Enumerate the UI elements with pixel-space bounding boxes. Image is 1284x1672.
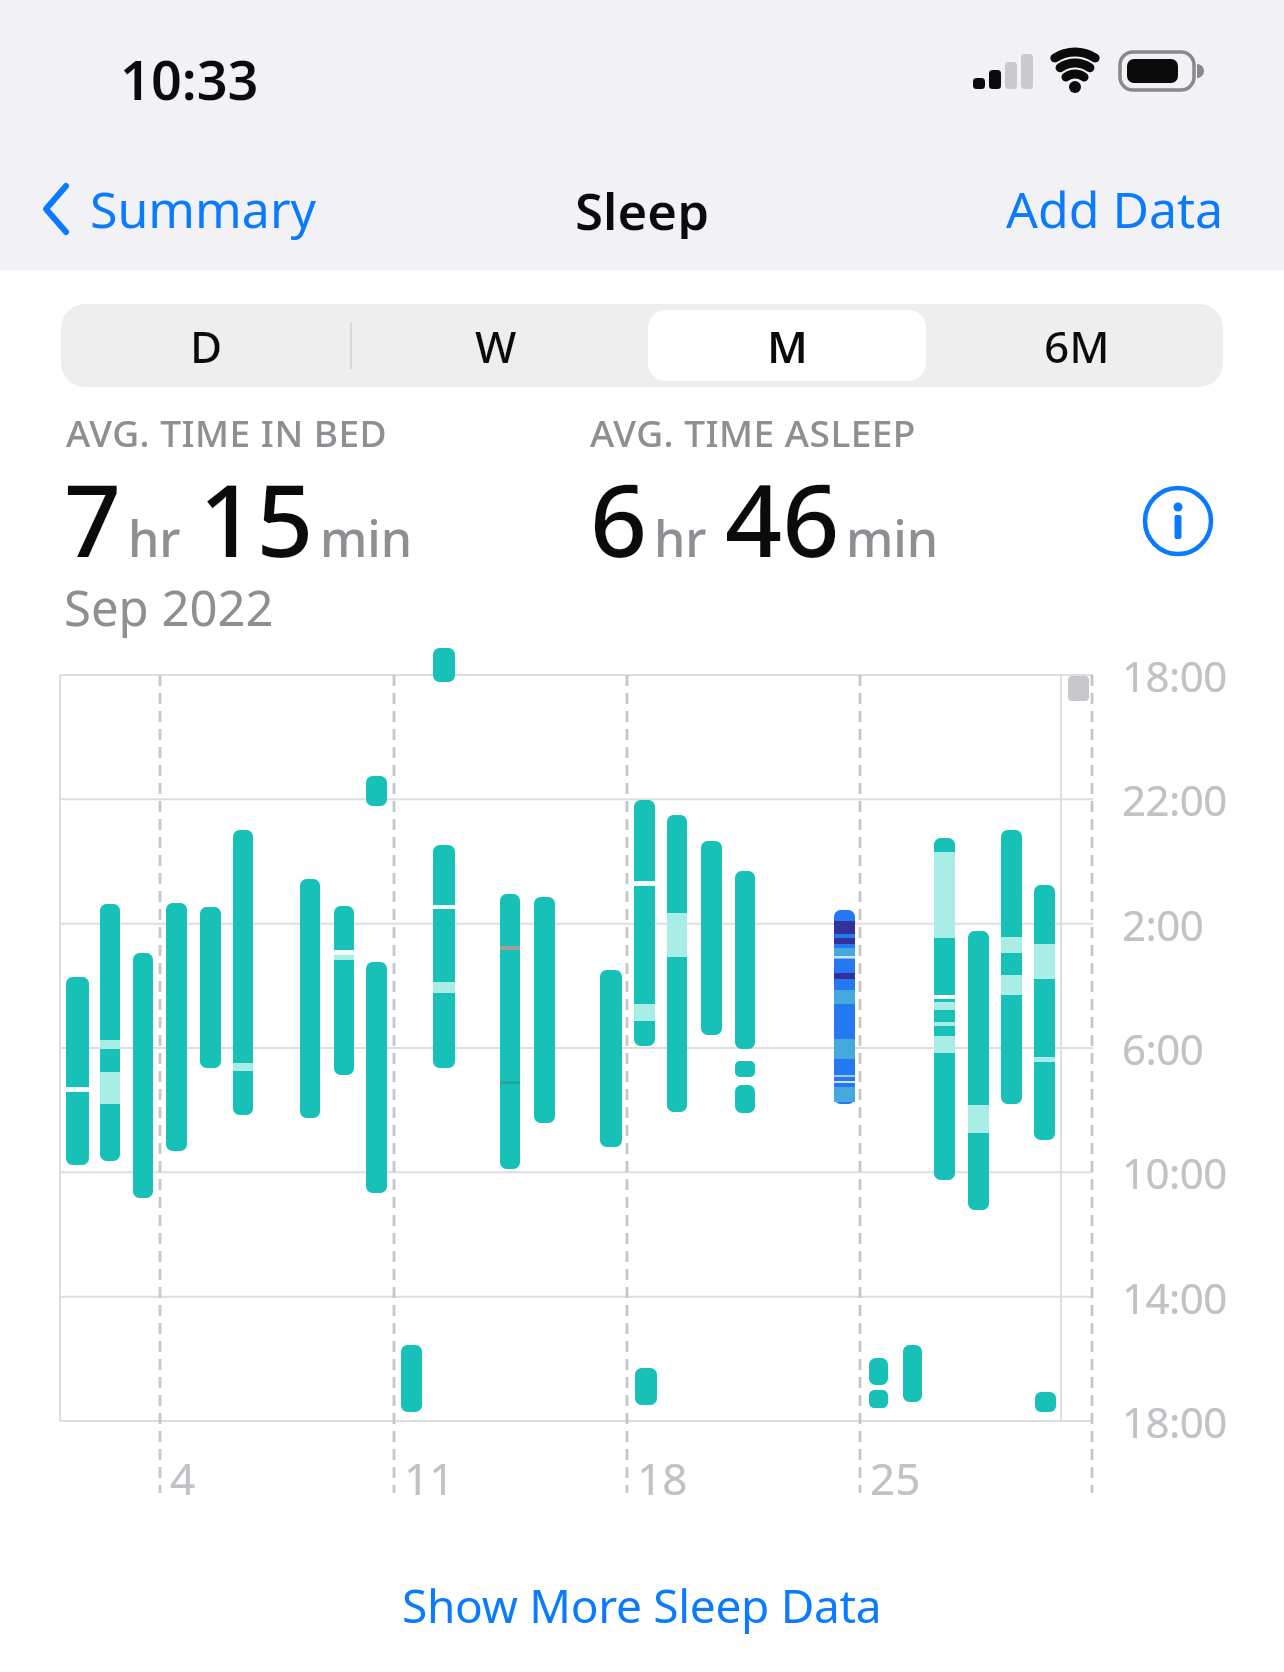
staticText: 18:00 bbox=[1122, 647, 1227, 704]
staticText: W bbox=[475, 316, 517, 376]
staticText: AVG. TIME IN BED bbox=[66, 407, 388, 457]
staticText: 11 bbox=[404, 1448, 455, 1508]
staticText: 15 bbox=[199, 450, 314, 586]
staticText: D bbox=[190, 316, 223, 376]
button[interactable]: Add Data bbox=[984, 175, 1224, 239]
button[interactable]: D bbox=[61, 304, 351, 387]
staticText: AVG. TIME ASLEEP bbox=[590, 407, 916, 457]
button[interactable]: M bbox=[642, 304, 932, 387]
staticText: 10:00 bbox=[1122, 1144, 1227, 1201]
staticText: Sleep bbox=[575, 175, 710, 239]
button[interactable]: Summary bbox=[40, 175, 317, 243]
staticText: min bbox=[320, 504, 413, 572]
staticText: 22:00 bbox=[1122, 771, 1227, 828]
staticText: 18 bbox=[637, 1448, 688, 1508]
staticText: 14:00 bbox=[1122, 1269, 1227, 1326]
staticText: 18:00 bbox=[1122, 1393, 1227, 1450]
button[interactable]: 6M bbox=[932, 304, 1222, 387]
staticText: hr bbox=[654, 504, 707, 572]
staticText: Show More Sleep Data bbox=[402, 1574, 882, 1637]
staticText: 25 bbox=[870, 1448, 921, 1508]
staticText: 7 bbox=[64, 450, 122, 586]
staticText: Add Data bbox=[1006, 175, 1224, 239]
staticText: 4 bbox=[170, 1448, 196, 1508]
staticText: 10:33 bbox=[120, 42, 259, 116]
staticText: M bbox=[767, 316, 808, 376]
button[interactable] bbox=[1140, 483, 1216, 559]
staticText: 46 bbox=[725, 450, 840, 586]
button[interactable]: Show More Sleep Data bbox=[0, 1570, 1284, 1640]
staticText: 2:00 bbox=[1122, 896, 1204, 953]
staticText: Summary bbox=[90, 175, 317, 243]
staticText: min bbox=[846, 504, 939, 572]
button[interactable]: W bbox=[351, 304, 641, 387]
staticText: hr bbox=[128, 504, 181, 572]
staticText: 6M bbox=[1044, 316, 1110, 376]
staticText: Sep 2022 bbox=[64, 574, 274, 641]
staticText: 6 bbox=[590, 450, 648, 586]
staticText: 6:00 bbox=[1122, 1020, 1204, 1077]
